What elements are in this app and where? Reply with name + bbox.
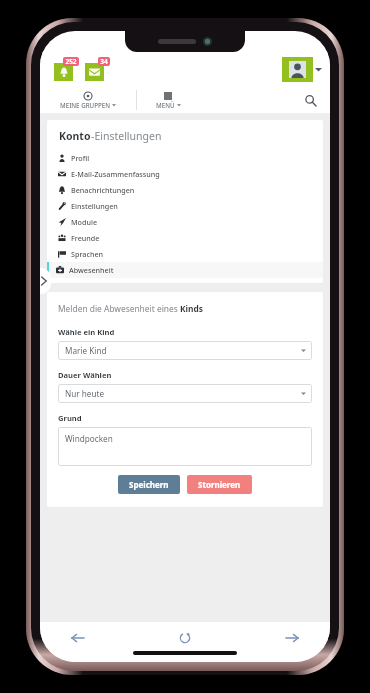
button[interactable]: Profil [47, 150, 323, 166]
staticText: Marie Kind [65, 345, 107, 356]
button[interactable]: Reload [173, 626, 197, 650]
button[interactable]: Abwesenheit [47, 262, 323, 278]
button[interactable]: Nur heute [58, 384, 312, 403]
button[interactable]: Benachrichtungen [47, 182, 323, 198]
staticText: -Einstellungen [91, 129, 162, 143]
button[interactable]: Profile menu [282, 57, 322, 82]
staticText: Benachrichtungen [71, 185, 135, 195]
staticText: Speichern [129, 479, 169, 490]
staticText: Dauer Wählen [58, 370, 112, 380]
staticText: MENÜ [156, 101, 175, 109]
button[interactable]: Windpocken [58, 427, 312, 466]
staticText: Sprachen [71, 249, 104, 259]
staticText: Kinds [180, 303, 204, 314]
button[interactable]: Notifications 34 [85, 57, 109, 81]
staticText: Grund [58, 413, 82, 423]
staticText: Module [71, 217, 98, 227]
staticText: Abwesenheit [69, 265, 114, 275]
button[interactable]: Marie Kind [58, 341, 312, 360]
button[interactable]: Freunde [47, 230, 323, 246]
button[interactable]: MENÜ [137, 92, 199, 109]
staticText: Stornieren [198, 479, 241, 490]
button[interactable]: Notifications 252 [54, 57, 78, 81]
button[interactable]: Search [301, 91, 319, 109]
staticText: E-Mail-Zusammenfassung [71, 169, 160, 179]
staticText: Nur heute [65, 388, 105, 399]
button[interactable]: Einstellungen [47, 198, 323, 214]
button[interactable]: Stornieren [187, 475, 252, 494]
button[interactable]: Module [47, 214, 323, 230]
staticText: Profil [71, 153, 90, 163]
staticText: Einstellungen [71, 201, 118, 211]
button[interactable]: Speichern [118, 475, 180, 494]
button[interactable]: E-Mail-Zusammenfassung [47, 166, 323, 182]
button[interactable]: Forward [280, 626, 304, 650]
staticText: Melden die Abwesenheit eines [58, 303, 180, 314]
button[interactable]: MEINE GRUPPEN [40, 92, 136, 109]
staticText: 34 [100, 57, 108, 66]
button[interactable]: Open sidebar [40, 268, 51, 294]
staticText: Wähle ein Kind [58, 327, 115, 337]
staticText: MEINE GRUPPEN [60, 101, 110, 109]
staticText: 252 [65, 57, 77, 66]
button[interactable]: Back [66, 626, 90, 650]
staticText: Konto [59, 129, 91, 143]
staticText: Freunde [71, 233, 100, 243]
button[interactable]: Sprachen [47, 246, 323, 262]
staticText: Windpocken [65, 433, 113, 444]
